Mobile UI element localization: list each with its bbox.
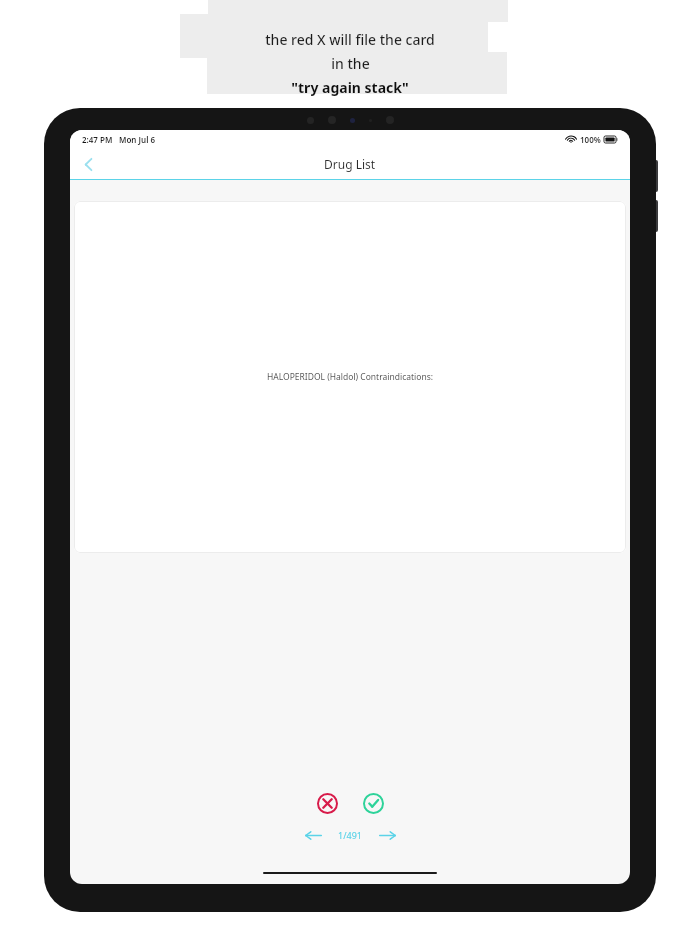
staticText: HALOPERIDOL (Haldol) Contraindications: xyxy=(267,371,433,383)
staticText: 100% xyxy=(580,134,601,145)
staticText: the red X will file the card xyxy=(265,30,435,49)
staticText: Mon Jul 6 xyxy=(119,134,156,145)
button[interactable]: HALOPERIDOL (Haldol) Contraindications: xyxy=(74,201,626,553)
button[interactable]: Mark correct xyxy=(360,790,386,816)
button[interactable]: Mark incorrect, try again stack xyxy=(314,790,340,816)
staticText: 2:47 PM xyxy=(82,134,113,145)
staticText: Drug List xyxy=(324,156,376,172)
button[interactable]: Back xyxy=(75,151,101,177)
staticText: 1/491 xyxy=(338,829,362,841)
staticText: "try again stack" xyxy=(291,78,409,97)
button[interactable]: Next card xyxy=(372,824,402,846)
staticText: in the xyxy=(331,54,370,73)
button[interactable]: Previous card xyxy=(298,824,328,846)
